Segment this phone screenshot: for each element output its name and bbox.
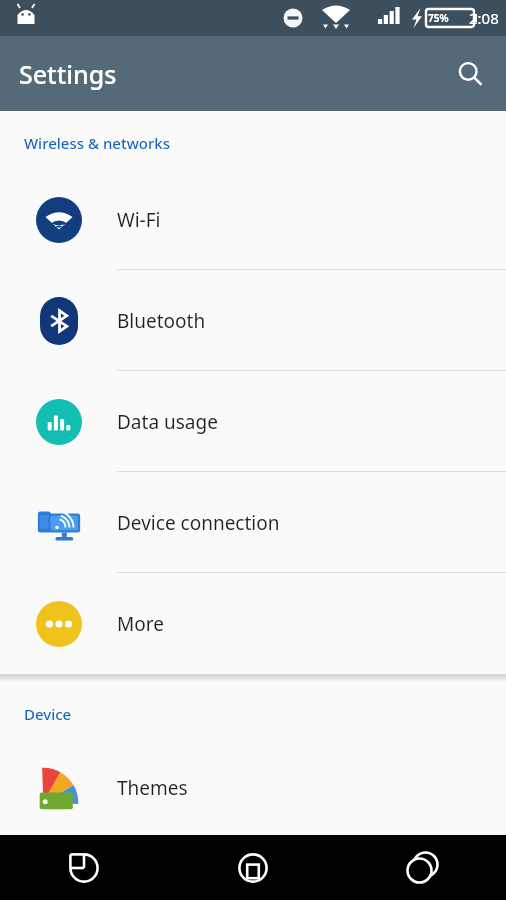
button[interactable]: Device connection bbox=[0, 472, 506, 573]
button[interactable]: Home bbox=[168, 835, 337, 900]
button[interactable]: Wi-Fi bbox=[0, 169, 506, 270]
button[interactable]: Recent apps bbox=[337, 835, 506, 900]
staticText: 75% bbox=[428, 11, 449, 25]
staticText: 2:08 bbox=[469, 8, 499, 28]
button[interactable]: Search bbox=[444, 48, 496, 100]
button[interactable]: More bbox=[0, 573, 506, 674]
staticText: Device bbox=[24, 704, 72, 724]
staticText: Wi-Fi bbox=[117, 207, 161, 233]
button[interactable]: Themes bbox=[0, 740, 506, 835]
staticText: More bbox=[117, 611, 164, 637]
staticText: Device connection bbox=[117, 510, 280, 536]
staticText: Settings bbox=[19, 57, 117, 91]
staticText: Themes bbox=[117, 775, 188, 801]
staticText: Wireless & networks bbox=[24, 133, 170, 153]
button[interactable]: Data usage bbox=[0, 371, 506, 472]
staticText: Data usage bbox=[117, 409, 218, 435]
button[interactable]: Back bbox=[0, 835, 168, 900]
staticText: Bluetooth bbox=[117, 308, 206, 334]
button[interactable]: Bluetooth bbox=[0, 270, 506, 371]
